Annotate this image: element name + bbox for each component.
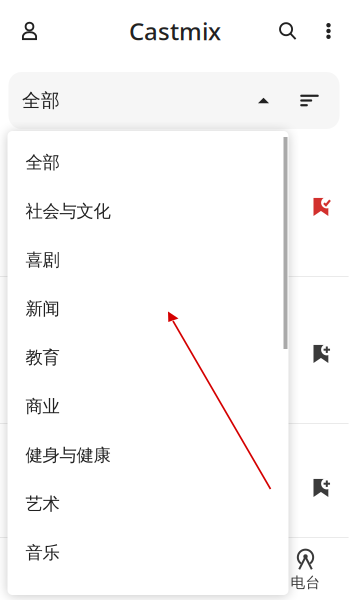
button[interactable]: Search — [268, 12, 306, 50]
button[interactable]: Sort — [279, 72, 340, 128]
staticText: 新闻 — [25, 298, 59, 319]
button[interactable]: 社会与文化 — [7, 187, 288, 236]
button[interactable]: More options — [311, 12, 345, 50]
staticText: Castmix — [129, 15, 221, 47]
staticText: 音乐 — [25, 542, 59, 563]
staticText: 全部 — [25, 152, 59, 173]
button[interactable]: 全部 — [8, 72, 279, 128]
button[interactable]: Account — [10, 12, 48, 50]
button[interactable]: 健身与健康 — [7, 431, 288, 480]
staticText: 健身与健康 — [25, 445, 110, 466]
staticText: 教育 — [25, 347, 59, 368]
staticText: 电台 — [290, 573, 320, 591]
button[interactable]: 音乐 — [7, 528, 288, 577]
button[interactable]: 艺术 — [7, 480, 288, 528]
staticText: 艺术 — [25, 493, 59, 515]
button[interactable]: 电台 — [276, 543, 334, 597]
button[interactable]: 教育 — [7, 333, 288, 382]
staticText: 社会与文化 — [25, 201, 110, 222]
staticText: 喜剧 — [25, 249, 59, 271]
button[interactable]: 商业 — [7, 382, 288, 431]
button[interactable]: 全部 — [7, 138, 288, 187]
button[interactable]: 新闻 — [7, 284, 288, 333]
staticText: 全部 — [22, 89, 60, 112]
staticText: 商业 — [25, 396, 59, 417]
button[interactable]: 喜剧 — [7, 236, 288, 284]
